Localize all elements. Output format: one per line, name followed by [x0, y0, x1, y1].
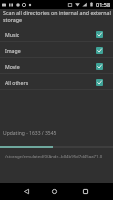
staticText: Scan all directories on internal and ext…	[3, 9, 111, 23]
button[interactable]: Movie	[0, 58, 113, 74]
button[interactable]: Back	[17, 183, 35, 200]
button[interactable]: Home	[45, 183, 63, 200]
button[interactable]: Recent apps	[76, 183, 94, 200]
button[interactable]: Image	[0, 42, 113, 58]
staticText: All others	[5, 79, 29, 86]
button[interactable]: All others	[0, 74, 113, 90]
staticText: Music	[5, 31, 20, 38]
staticText: Movie	[5, 63, 20, 70]
staticText: /storage/emulated/0/Andr…b04b95d7d45aa71…	[5, 153, 103, 159]
button[interactable]: Music	[0, 26, 113, 42]
staticText: Image	[5, 47, 21, 54]
staticText: 01:58	[96, 1, 111, 8]
staticText: Updating - 1633 / 3545	[3, 130, 57, 137]
